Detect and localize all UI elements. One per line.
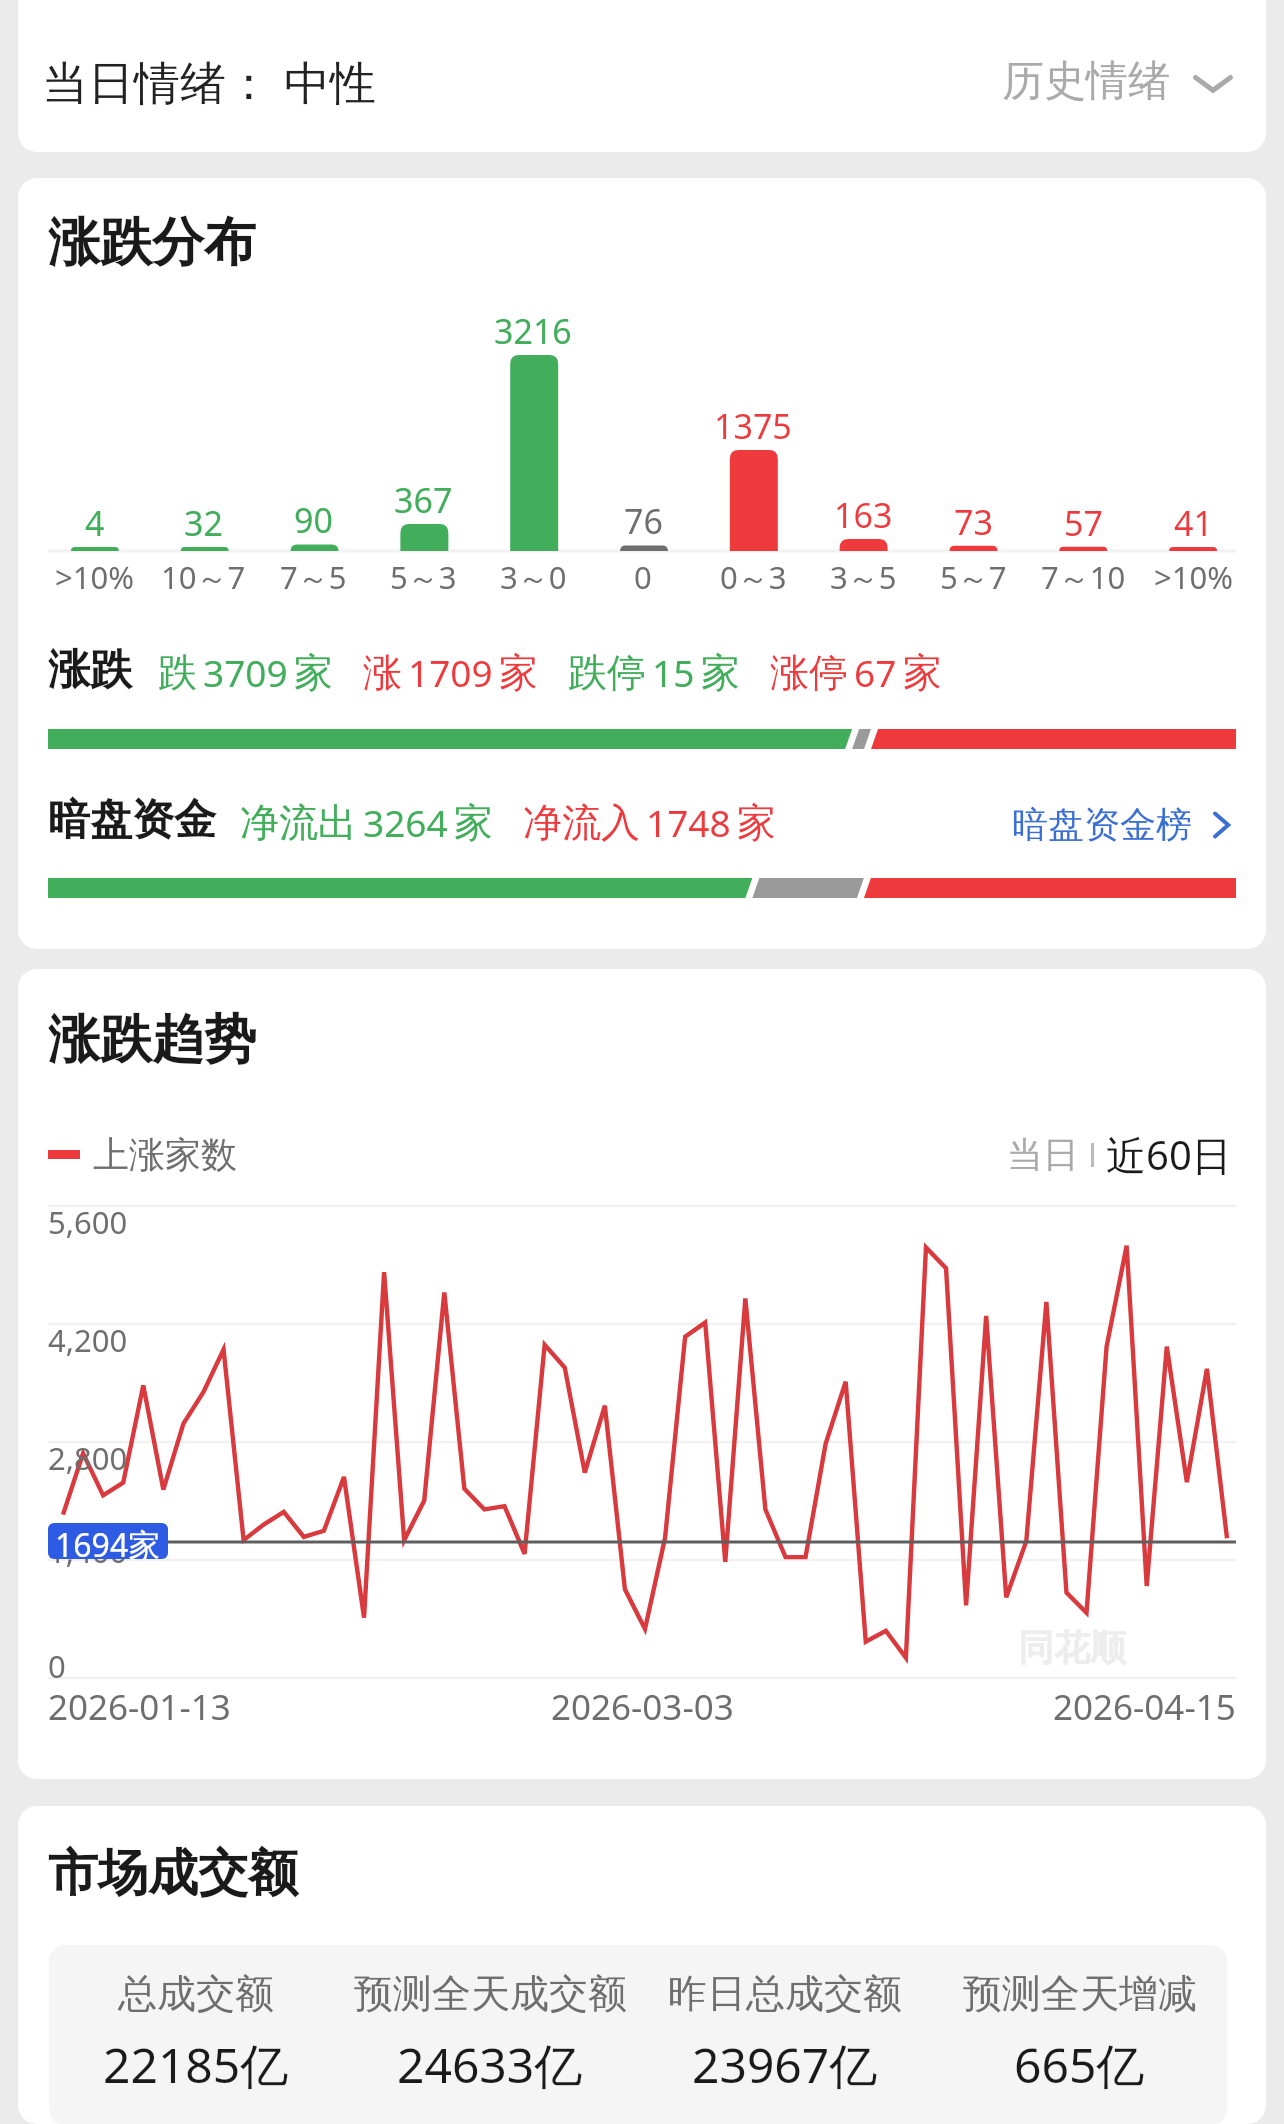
staticText: 2026-04-15 [1053,1683,1236,1731]
staticText: 5,600 [48,1201,128,1243]
staticText: 净流出 [240,798,357,847]
staticText: 163 [834,492,893,538]
button[interactable]: 预测全天增减 [932,1969,1227,2098]
staticText: 预测全天增减 [963,1969,1197,2018]
staticText: 2,800 [48,1437,128,1479]
button[interactable]: 近60日 [1102,1121,1236,1188]
staticText: 57 [1064,500,1103,546]
staticText: 家 [903,648,942,697]
staticText: 1709 [408,647,493,697]
staticText: 67 [854,647,897,697]
staticText: >10% [55,556,134,598]
staticText: 0 [634,556,652,598]
staticText: 32 [184,500,223,546]
staticText: 0 [48,1645,66,1687]
staticText: 7～5 [280,556,347,598]
staticText: 90 [294,497,333,543]
staticText: 同花顺 [1018,1625,1126,1670]
button[interactable]: 当日 [1003,1126,1083,1183]
staticText: 4,200 [48,1319,128,1361]
button[interactable]: 昨日总成交额 [637,1969,932,2098]
staticText: 3216 [494,308,572,354]
staticText: 历史情绪 [1002,55,1170,108]
staticText: 24633亿 [397,2032,583,2098]
staticText: 3～0 [500,556,567,598]
staticText: 7～10 [1041,556,1126,598]
staticText: 3709 [203,647,288,697]
other: 展开历史情绪 [1190,59,1236,105]
staticText: 10～7 [161,556,246,598]
button[interactable]: 总成交额 [49,1969,343,2098]
staticText: 2026-01-13 [48,1683,231,1731]
staticText: 当日 [1007,1132,1079,1177]
staticText: 3264 [363,797,448,847]
staticText: 1748 [646,797,731,847]
staticText: 665亿 [1014,2032,1145,2098]
staticText: 跌停 [568,648,646,697]
staticText: 上涨家数 [93,1132,237,1177]
staticText: 41 [1174,500,1213,546]
staticText: 5～3 [390,556,457,598]
staticText: 预测全天成交额 [354,1969,627,2018]
staticText: 暗盘资金榜 [1012,802,1192,847]
staticText: 15 [652,647,695,697]
staticText: 4 [85,500,105,546]
staticText: 0～3 [720,556,787,598]
staticText: 1,400 [48,1530,128,1572]
staticText: 1375 [714,403,792,449]
staticText: 5～7 [940,556,1007,598]
staticText: 市场成交额 [48,1842,298,1905]
staticText: 涨 [363,648,402,697]
staticText: 涨跌 [48,644,132,697]
staticText: 家 [294,648,333,697]
button[interactable]: 历史情绪 [1002,55,1236,108]
staticText: 367 [394,477,453,523]
staticText: 跌 [158,648,197,697]
button[interactable]: 预测全天成交额 [343,1969,637,2098]
staticText: 家 [737,798,776,847]
staticText: 家 [454,798,493,847]
staticText: 当日情绪： 中性 [42,50,376,113]
staticText: >10% [1154,556,1233,598]
staticText: 涨跌分布 [48,210,256,276]
button[interactable]: 暗盘资金榜 [1012,802,1236,847]
staticText: 近60日 [1106,1127,1232,1182]
staticText: 涨停 [770,648,848,697]
staticText: 2026-03-03 [551,1683,734,1731]
staticText: 暗盘资金 [48,794,216,847]
staticText: 73 [954,499,993,545]
staticText: 23967亿 [692,2032,878,2098]
staticText: 涨跌趋势 [48,1007,256,1073]
staticText: 22185亿 [103,2032,289,2098]
staticText: 家 [499,648,538,697]
staticText: 3～5 [830,556,897,598]
staticText: 昨日总成交额 [668,1969,902,2018]
staticText: 净流入 [523,798,640,847]
staticText: 总成交额 [118,1969,274,2018]
staticText: 1694家 [55,1523,161,1559]
staticText: 76 [624,498,663,544]
button[interactable]: 当日情绪： 中性 [18,0,1266,152]
staticText: 家 [701,648,740,697]
